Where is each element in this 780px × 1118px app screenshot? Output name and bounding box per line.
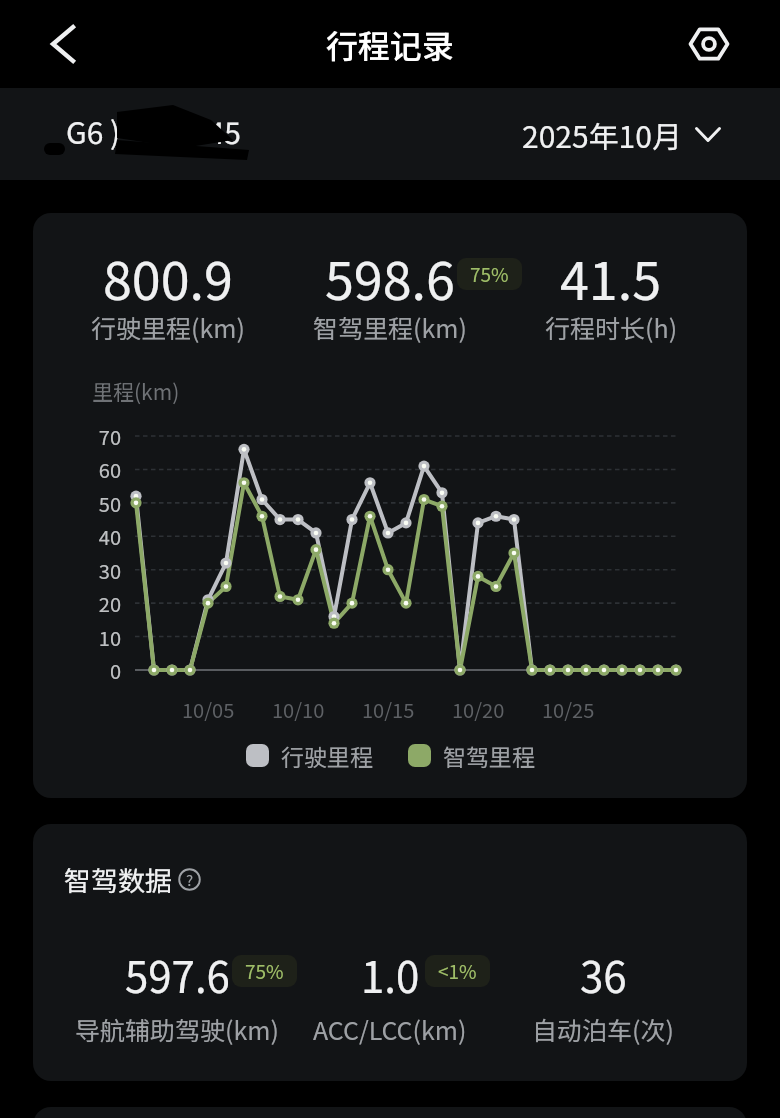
staticText: 行驶里程 bbox=[281, 739, 373, 772]
staticText: 598.6 bbox=[325, 240, 455, 315]
staticText: 智驾里程(km) bbox=[313, 309, 467, 345]
staticText: 行驶里程(km) bbox=[91, 309, 245, 345]
button[interactable]: 41.5 bbox=[461, 240, 747, 315]
staticText: 20 bbox=[98, 589, 121, 618]
staticText: 800.9 bbox=[103, 240, 233, 315]
staticText: 10/10 bbox=[272, 695, 325, 724]
staticText: 41.5 bbox=[560, 240, 662, 315]
staticText: 30 bbox=[98, 556, 121, 585]
staticText: 36 bbox=[580, 944, 627, 1005]
staticText: 智驾里程 bbox=[443, 739, 535, 772]
button[interactable]: Back bbox=[28, 11, 94, 77]
button[interactable]: 36 bbox=[453, 944, 747, 1005]
staticText: 10/20 bbox=[452, 695, 505, 724]
staticText: 40 bbox=[98, 522, 121, 551]
button[interactable]: 智驾里程 bbox=[408, 739, 535, 772]
staticText: 597.6 bbox=[125, 944, 230, 1005]
staticText: 0 bbox=[109, 656, 121, 685]
button[interactable]: 2025年10月 bbox=[522, 106, 721, 162]
staticText: 行程时长(h) bbox=[545, 309, 678, 345]
staticText: 10 bbox=[98, 623, 121, 652]
staticText: ? bbox=[186, 869, 194, 891]
button[interactable]: 597.6 bbox=[33, 944, 327, 1005]
staticText: 行程记录 bbox=[326, 21, 455, 67]
staticText: G6 ) ￭￭￭￭ *45 bbox=[66, 109, 241, 152]
staticText: 50 bbox=[98, 489, 121, 518]
button[interactable]: 行驶里程 bbox=[246, 739, 373, 772]
button[interactable]: 598.6 bbox=[240, 240, 540, 315]
button[interactable]: 1.0 bbox=[240, 944, 540, 1005]
staticText: 75% bbox=[245, 957, 284, 985]
staticText: ACC/LCC(km) bbox=[313, 1011, 467, 1047]
staticText: 60 bbox=[98, 455, 121, 484]
staticText: 10/05 bbox=[182, 695, 235, 724]
staticText: 75% bbox=[470, 260, 509, 288]
button[interactable]: 智驾数据 bbox=[64, 860, 201, 899]
staticText: 70 bbox=[98, 422, 121, 451]
staticText: 1.0 bbox=[361, 944, 420, 1005]
button[interactable]: G6 ) ￭￭￭￭ *45 bbox=[66, 106, 296, 162]
staticText: <1% bbox=[438, 957, 477, 985]
staticText: 智驾数据 bbox=[64, 860, 172, 899]
staticText: 10/25 bbox=[542, 695, 595, 724]
button[interactable]: Settings bbox=[677, 12, 741, 76]
staticText: 自动泊车(次) bbox=[532, 1011, 674, 1047]
staticText: 里程(km) bbox=[92, 376, 180, 406]
staticText: 导航辅助驾驶(km) bbox=[75, 1011, 279, 1047]
staticText: 10/15 bbox=[362, 695, 415, 724]
staticText: 2025年10月 bbox=[522, 113, 682, 156]
button[interactable]: 800.9 bbox=[33, 240, 318, 315]
